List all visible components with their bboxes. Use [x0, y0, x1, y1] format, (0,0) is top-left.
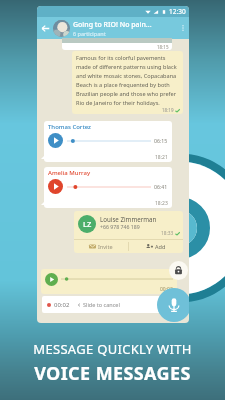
button[interactable]: Add	[129, 243, 183, 250]
staticText: Famous for its colorful pavements made o…	[76, 54, 177, 107]
staticText: 18:15	[157, 44, 169, 50]
staticText: Thomas Cortez	[48, 123, 91, 131]
button[interactable]: Lock recording	[169, 261, 188, 280]
staticText: Amelia Murray	[48, 169, 91, 177]
staticText: VOICE MESSAGES	[34, 361, 191, 386]
staticText: 18:21	[155, 154, 168, 161]
staticText: 18:19	[162, 107, 174, 113]
button[interactable]: Invite	[74, 243, 128, 250]
staticText: +66 978 746 189	[100, 223, 140, 230]
button[interactable]: Record voice message	[157, 288, 189, 322]
staticText: Slide to cancel	[83, 301, 120, 308]
staticText: 06:15	[154, 137, 168, 144]
staticText: 00:02	[160, 286, 173, 293]
button[interactable]: LZ	[74, 211, 183, 253]
staticText: 18:23	[155, 200, 168, 207]
staticText: Louise Zimmerman	[100, 215, 157, 223]
button[interactable]: Amelia Murray	[44, 167, 172, 208]
staticText: LZ	[83, 219, 92, 229]
staticText: 6 participant	[73, 30, 106, 37]
staticText: 00:02	[54, 301, 70, 309]
staticText: MESSAGE QUICKLY WITH	[33, 340, 192, 358]
button[interactable]: Play	[45, 273, 58, 286]
staticText: Add	[155, 243, 166, 250]
staticText: Going to RIO! No pain...	[73, 20, 152, 30]
staticText: 06:41	[154, 183, 168, 190]
button[interactable]: Back	[37, 17, 53, 39]
staticText: Invite	[98, 243, 113, 250]
button[interactable]: Thomas Cortez	[44, 121, 172, 162]
button[interactable]: More options	[177, 17, 189, 39]
staticText: 18:33	[161, 230, 174, 237]
staticText: 12:30	[169, 7, 186, 16]
